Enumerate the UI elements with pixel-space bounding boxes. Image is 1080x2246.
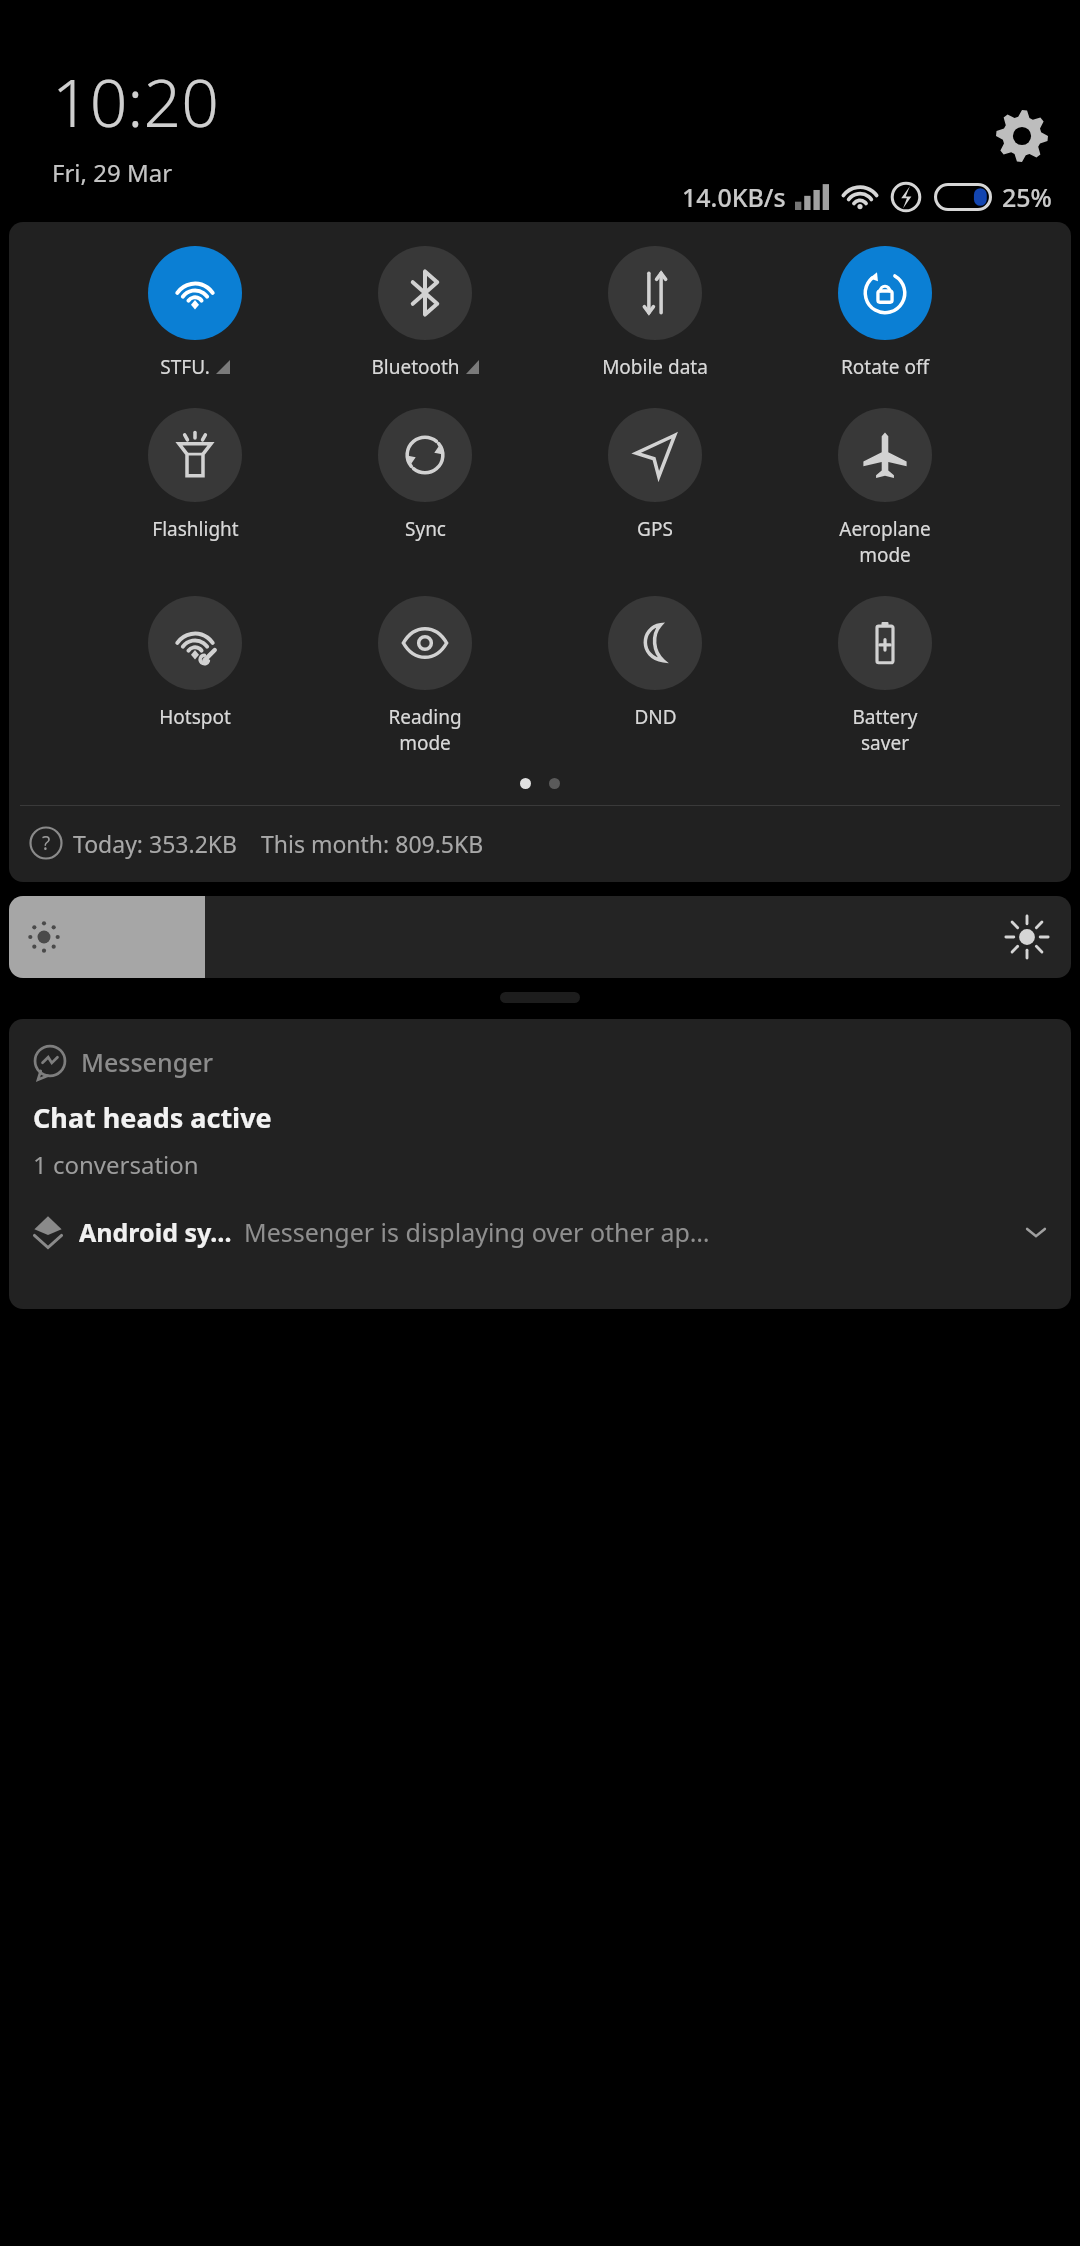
staticText: Rotate off bbox=[841, 354, 929, 380]
staticText: Battery saver bbox=[831, 704, 939, 756]
button[interactable]: Bluetooth bbox=[371, 246, 479, 380]
button[interactable]: Hotspot bbox=[141, 596, 249, 730]
staticText: Chat heads active bbox=[33, 1099, 272, 1136]
button[interactable]: Messenger bbox=[9, 1019, 1071, 1181]
staticText: Android sy… bbox=[79, 1215, 232, 1249]
staticText: Bluetooth bbox=[371, 354, 460, 380]
staticText: 1 conversation bbox=[33, 1148, 199, 1181]
staticText: Reading mode bbox=[371, 704, 479, 756]
button[interactable]: Sync bbox=[371, 408, 479, 542]
staticText: Sync bbox=[405, 516, 446, 542]
button[interactable]: Rotate off bbox=[831, 246, 939, 380]
button[interactable]: Aeroplane mode bbox=[831, 408, 939, 568]
button[interactable]: Settings bbox=[996, 110, 1048, 162]
staticText: Hotspot bbox=[159, 704, 231, 730]
staticText: Today: 353.2KB bbox=[73, 828, 237, 859]
staticText: STFU. bbox=[160, 354, 210, 380]
staticText: Fri, 29 Mar bbox=[52, 156, 173, 189]
staticText: 10:20 bbox=[52, 56, 219, 146]
staticText: GPS bbox=[637, 516, 673, 542]
staticText: This month: 809.5KB bbox=[261, 828, 484, 859]
staticText: Messenger bbox=[81, 1045, 214, 1079]
staticText: Flashlight bbox=[152, 516, 239, 542]
staticText: Messenger is displaying over other ap… bbox=[244, 1215, 710, 1249]
button[interactable]: Reading mode bbox=[371, 596, 479, 756]
button[interactable]: Brightness bbox=[9, 896, 1071, 978]
staticText: 14.0KB/s bbox=[682, 180, 786, 214]
staticText: Mobile data bbox=[602, 354, 708, 380]
staticText: 25% bbox=[1002, 180, 1052, 214]
button[interactable]: STFU. bbox=[141, 246, 249, 380]
button[interactable]: GPS bbox=[601, 408, 709, 542]
staticText: Aeroplane mode bbox=[831, 516, 939, 568]
button[interactable]: ? bbox=[29, 826, 1071, 860]
button[interactable]: Android sy… bbox=[9, 1215, 1071, 1249]
staticText: ? bbox=[42, 830, 51, 856]
staticText: DND bbox=[634, 704, 677, 730]
button[interactable]: Mobile data bbox=[601, 246, 709, 380]
button[interactable]: Battery saver bbox=[831, 596, 939, 756]
button[interactable]: DND bbox=[601, 596, 709, 730]
button[interactable]: Flashlight bbox=[141, 408, 249, 542]
